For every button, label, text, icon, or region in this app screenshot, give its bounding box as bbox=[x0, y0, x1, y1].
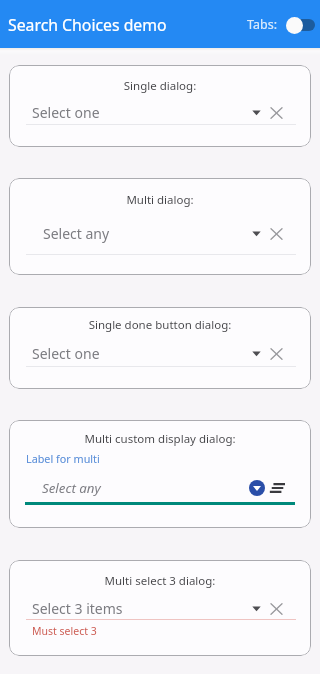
staticText: Single dialog: bbox=[9, 78, 311, 94]
other: Open dropdown bbox=[252, 105, 261, 119]
button[interactable]: Select any bbox=[43, 223, 282, 243]
staticText: Select one bbox=[32, 344, 252, 363]
staticText: Label for multi bbox=[26, 451, 100, 466]
staticText: Multi dialog: bbox=[9, 192, 311, 208]
button[interactable]: Select any bbox=[42, 478, 285, 498]
other: List options bbox=[270, 483, 285, 494]
staticText: Select one bbox=[32, 103, 252, 122]
other: Open dropdown bbox=[252, 346, 261, 360]
staticText: Multi select 3 dialog: bbox=[9, 573, 311, 589]
staticText: Must select 3 bbox=[32, 624, 97, 638]
staticText: Tabs: bbox=[247, 16, 277, 33]
staticText: Select 3 items bbox=[32, 599, 252, 618]
staticText: Select any bbox=[42, 479, 249, 497]
button[interactable]: Select one bbox=[32, 343, 282, 363]
button[interactable]: Select 3 items bbox=[32, 598, 282, 618]
staticText: Multi custom display dialog: bbox=[9, 431, 311, 447]
other: Clear bbox=[271, 346, 282, 360]
staticText: Select any bbox=[43, 224, 252, 243]
button[interactable]: Select one bbox=[32, 102, 282, 122]
other: Open dropdown bbox=[252, 601, 261, 615]
button[interactable]: Expand bbox=[249, 480, 265, 496]
other: Clear bbox=[271, 226, 282, 240]
staticText: Search Choices demo bbox=[8, 14, 167, 36]
staticText: Single done button dialog: bbox=[9, 317, 311, 333]
other: Clear bbox=[271, 601, 282, 615]
button[interactable]: Tabs toggle bbox=[286, 15, 315, 35]
other: Clear bbox=[271, 105, 282, 119]
other: Open dropdown bbox=[252, 226, 261, 240]
